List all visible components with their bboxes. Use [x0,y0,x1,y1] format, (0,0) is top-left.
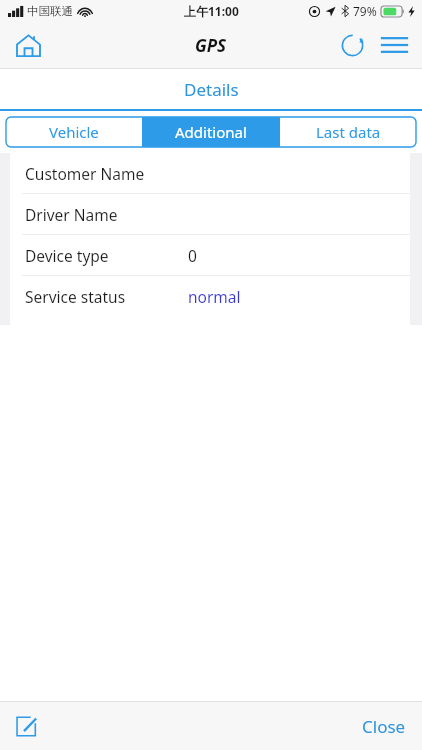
staticText: Device type [25,245,109,266]
staticText: 上午11:00 [184,3,239,19]
button[interactable]: Refresh [332,25,372,65]
button[interactable]: Close [352,707,416,746]
button[interactable]: Last data [280,117,416,147]
button[interactable]: Menu [374,25,414,65]
button[interactable]: Vehicle [6,117,142,147]
button[interactable]: Home [6,23,50,67]
staticText: Details [184,78,239,101]
staticText: 0 [188,245,197,266]
staticText: Additional [175,122,247,142]
button[interactable]: Additional [143,117,279,147]
staticText: Last data [316,122,381,142]
button[interactable]: Edit [4,704,48,748]
button[interactable]: Customer Name [10,153,410,193]
staticText: 79% [353,3,377,19]
staticText: Service status [25,286,126,307]
staticText: normal [188,286,241,307]
staticText: Driver Name [25,204,118,225]
staticText: Vehicle [49,122,99,142]
button[interactable]: Driver Name [10,194,410,234]
staticText: 中国联通 [27,4,73,18]
button[interactable]: Service status [10,276,410,317]
staticText: Close [362,715,406,738]
staticText: GPS [195,34,227,57]
staticText: Customer Name [25,163,145,184]
button[interactable]: Device type [10,235,410,275]
